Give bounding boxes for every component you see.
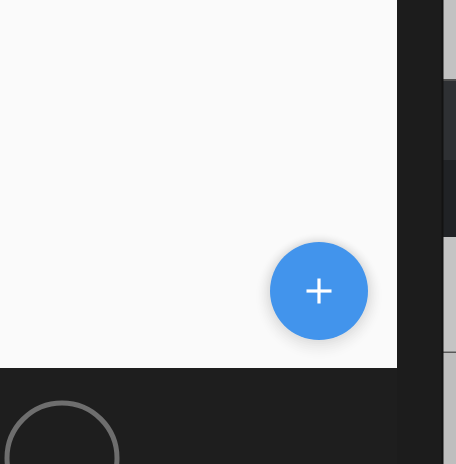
button[interactable]: Add: [270, 242, 368, 340]
